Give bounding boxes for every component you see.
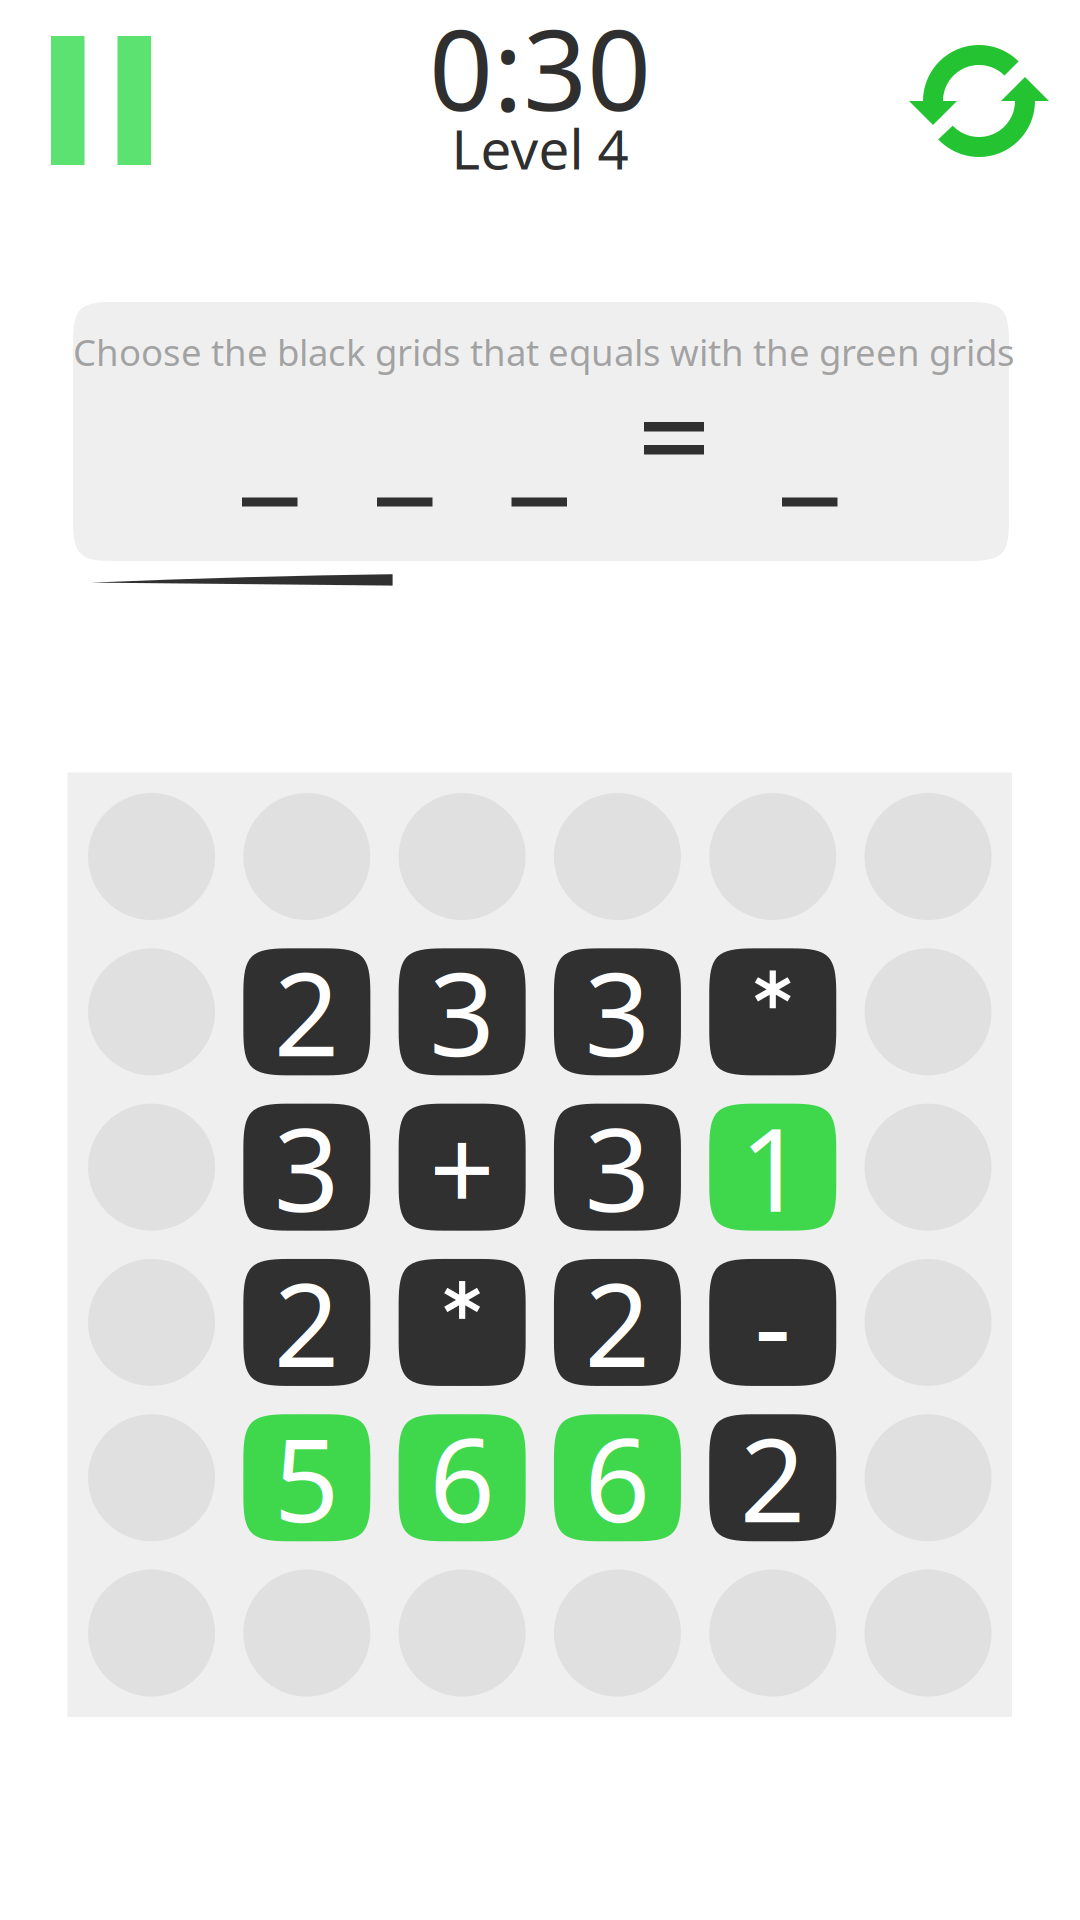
button[interactable]: 2 [243, 1259, 370, 1386]
button[interactable]: 6 [399, 1414, 526, 1541]
button[interactable]: 3 [554, 1104, 681, 1231]
button[interactable]: 3 [554, 948, 681, 1075]
staticText: 3 [429, 936, 495, 1088]
staticText: 5 [274, 1402, 340, 1554]
staticText: 0:30 [429, 0, 651, 142]
button[interactable]: 6 [554, 1414, 681, 1541]
button[interactable]: 3 [243, 1104, 370, 1231]
button[interactable]: 1 [709, 1104, 836, 1231]
staticText: Choose the black grids that equals with … [73, 327, 1015, 377]
staticText: 6 [429, 1402, 495, 1554]
button[interactable]: Restart level [904, 38, 1050, 164]
staticText: 3 [274, 1091, 340, 1243]
button[interactable] [399, 1259, 526, 1386]
staticText: 3 [584, 936, 650, 1088]
button[interactable]: + [399, 1104, 526, 1231]
button[interactable]: 5 [243, 1414, 370, 1541]
staticText: 1 [740, 1091, 806, 1243]
button[interactable] [709, 948, 836, 1075]
button[interactable]: 2 [709, 1414, 836, 1541]
button[interactable]: - [709, 1259, 836, 1386]
staticText: Level 4 [451, 112, 628, 185]
staticText: - [754, 1246, 791, 1399]
staticText: 2 [274, 936, 340, 1088]
button[interactable]: 3 [399, 948, 526, 1075]
button[interactable]: Pause [51, 36, 151, 165]
staticText: + [429, 1091, 495, 1243]
staticText: 3 [584, 1091, 650, 1243]
staticText: 6 [584, 1402, 650, 1554]
staticText: 2 [584, 1246, 650, 1399]
staticText: 2 [740, 1402, 806, 1554]
staticText: 2 [274, 1246, 340, 1399]
button[interactable]: 2 [243, 948, 370, 1075]
button[interactable]: 2 [554, 1259, 681, 1386]
